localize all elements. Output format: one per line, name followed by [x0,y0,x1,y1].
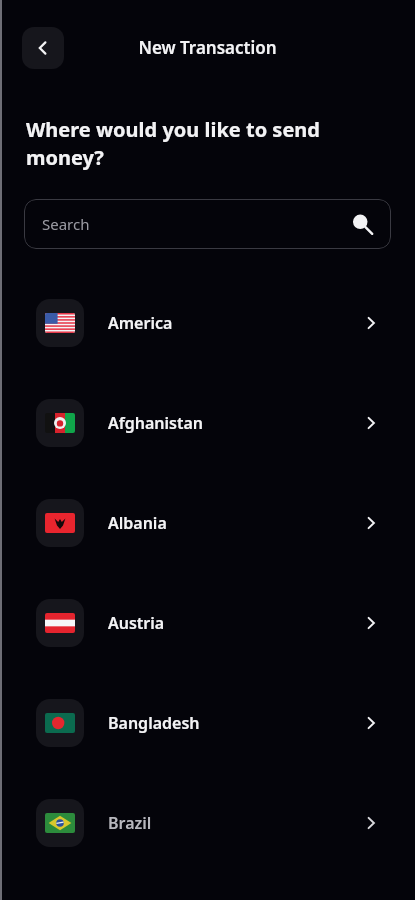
button[interactable]: Austria [0,573,415,673]
staticText: Austria [108,612,165,634]
staticText: New Transaction [0,36,415,59]
button[interactable]: Albania [0,473,415,573]
button[interactable]: Back [22,27,64,69]
button[interactable]: Bangladesh [0,673,415,773]
staticText: America [108,312,173,334]
staticText: Where would you like to send money? [26,116,355,171]
button[interactable]: America [0,273,415,373]
staticText: Brazil [108,812,152,834]
staticText: Albania [108,512,167,534]
staticText: Bangladesh [108,712,200,734]
button[interactable]: Brazil [0,773,415,873]
button[interactable]: Search [24,199,391,249]
button[interactable]: Afghanistan [0,373,415,473]
staticText: Afghanistan [108,412,203,434]
staticText: Search [42,214,90,234]
